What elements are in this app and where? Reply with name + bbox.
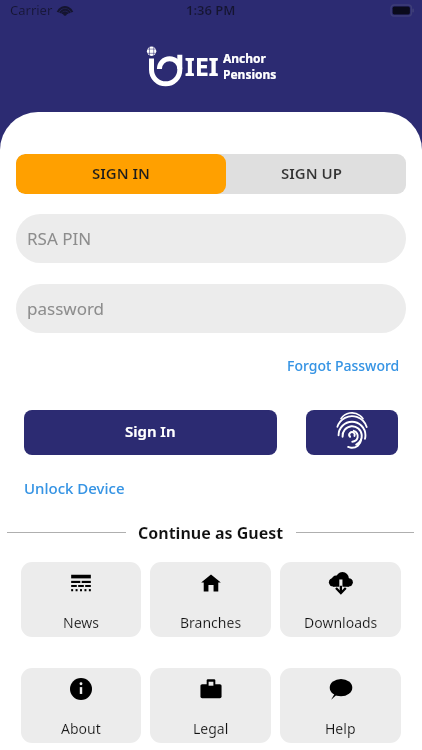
staticText: RSA PIN xyxy=(27,227,92,250)
button[interactable]: Branches xyxy=(150,562,271,637)
staticText: Anchor xyxy=(223,50,266,66)
staticText: About xyxy=(61,719,101,738)
staticText: IEI xyxy=(185,49,219,83)
button[interactable]: About xyxy=(21,668,141,743)
staticText: password xyxy=(27,297,105,320)
button[interactable]: SIGN IN xyxy=(16,154,226,194)
staticText: News xyxy=(63,613,99,632)
staticText: Carrier xyxy=(10,1,53,19)
button[interactable]: Help xyxy=(280,668,401,743)
button[interactable]: password xyxy=(16,284,406,333)
button[interactable]: Fingerprint login xyxy=(306,410,398,455)
button[interactable]: Forgot Password xyxy=(287,356,400,375)
staticText: Downloads xyxy=(304,613,378,632)
staticText: Help xyxy=(325,719,356,738)
staticText: SIGN IN xyxy=(92,163,150,183)
staticText: Continue as Guest xyxy=(138,522,284,544)
button[interactable]: RSA PIN xyxy=(16,214,406,263)
staticText: Pensions xyxy=(223,66,277,82)
staticText: Legal xyxy=(193,719,229,738)
button[interactable]: Unlock Device xyxy=(24,478,125,498)
button[interactable]: News xyxy=(21,562,141,637)
button[interactable]: Sign In xyxy=(24,410,277,455)
button[interactable]: Legal xyxy=(150,668,271,743)
staticText: Sign In xyxy=(125,421,176,441)
staticText: 1:36 PM xyxy=(186,1,236,19)
staticText: Branches xyxy=(180,613,242,632)
button[interactable]: SIGN UP xyxy=(226,154,406,194)
button[interactable]: Downloads xyxy=(280,562,401,637)
staticText: SIGN UP xyxy=(281,163,342,183)
